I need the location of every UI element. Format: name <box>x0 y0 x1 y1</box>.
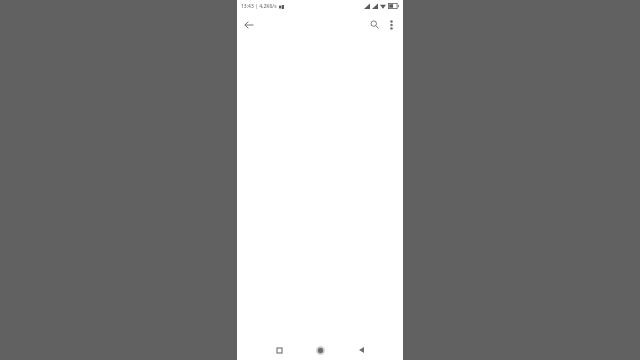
button[interactable]: Home <box>312 342 328 358</box>
staticText: 13:43 | 4,2K6/s <box>241 3 277 10</box>
button[interactable]: Back <box>240 16 257 33</box>
button[interactable]: Recent apps <box>271 342 287 358</box>
button[interactable]: Search <box>366 16 383 33</box>
button[interactable]: More options <box>383 16 400 33</box>
button[interactable]: Back <box>353 342 369 358</box>
